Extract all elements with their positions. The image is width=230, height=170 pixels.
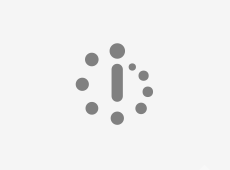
image: Loading — [0, 0, 230, 170]
